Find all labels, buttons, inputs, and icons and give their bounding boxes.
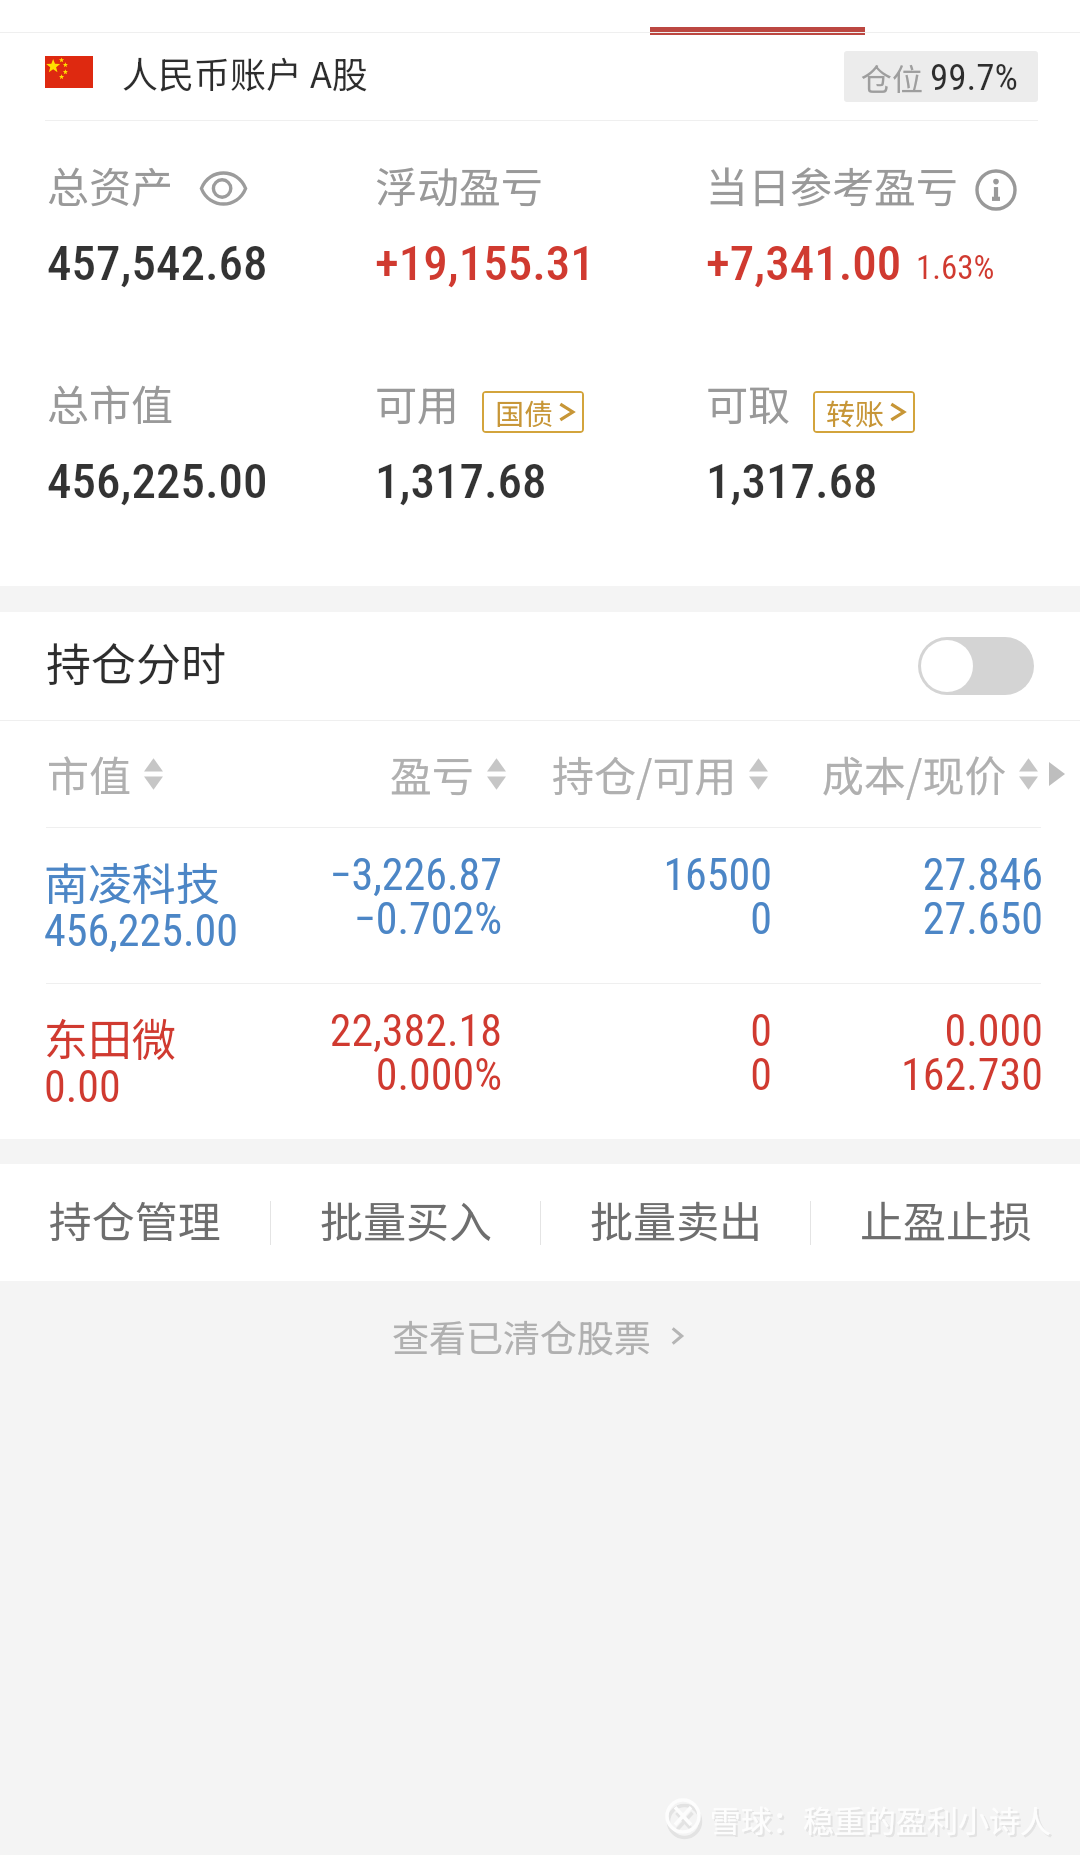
staticText: 1.63% (916, 248, 995, 287)
button[interactable]: 南凌科技 (0, 827, 1080, 983)
button[interactable]: 转账 (813, 391, 915, 433)
button[interactable]: 仓位 (844, 51, 1038, 102)
button[interactable]: 持仓管理 (0, 1164, 270, 1281)
staticText: 0 (520, 893, 772, 945)
staticText: 27.846 (790, 849, 1043, 901)
staticText: 人民币账户 A股 (122, 46, 368, 98)
button[interactable]: 查看已清仓股票 (0, 1273, 1080, 1398)
staticText: 0.000 (790, 1005, 1043, 1057)
staticText: 批量买入 (320, 1188, 492, 1250)
staticText: 可用 (375, 372, 460, 433)
button[interactable]: 持仓/可用 (552, 743, 768, 804)
button[interactable]: 止盈止损 (811, 1164, 1080, 1281)
button[interactable]: 批量买入 (271, 1164, 540, 1281)
staticText: 持仓/可用 (552, 743, 737, 804)
staticText: 27.650 (790, 893, 1043, 945)
staticText: 0.00 (44, 1061, 121, 1113)
button[interactable]: Toggle intraday chart (918, 637, 1034, 695)
staticText: 456,225.00 (44, 905, 239, 957)
staticText: 16500 (520, 849, 772, 901)
button[interactable]: 持仓分时 (0, 607, 1080, 715)
staticText: 1,317.68 (706, 453, 878, 510)
staticText: 22,382.18 (230, 1005, 502, 1057)
staticText: 457,542.68 (47, 235, 268, 292)
staticText: 1,317.68 (375, 453, 547, 510)
button[interactable]: 东田微 (0, 983, 1080, 1139)
button[interactable]: 国债 (482, 391, 584, 433)
staticText: 盈亏 (390, 743, 475, 804)
staticText: 162.730 (790, 1049, 1043, 1101)
staticText: 总资产 (47, 154, 174, 215)
staticText: 南凌科技 (44, 849, 220, 913)
staticText: +19,155.31 (375, 235, 595, 292)
button[interactable]: 市值 (47, 743, 163, 804)
staticText: 成本/现价 (822, 743, 1007, 804)
staticText: 0 (520, 1049, 772, 1101)
staticText: +7,341.00 (706, 235, 902, 292)
staticText: 仓位 (861, 55, 923, 100)
staticText: 国债 (495, 391, 554, 433)
button[interactable]: 盈亏 (390, 743, 506, 804)
button[interactable]: 人民币账户 A股 (0, 28, 1080, 115)
staticText: 止盈止损 (860, 1188, 1032, 1250)
button[interactable]: Toggle balance visibility (200, 170, 247, 207)
staticText: 可取 (706, 372, 791, 433)
button[interactable]: 成本/现价 (822, 743, 1038, 804)
staticText: −0.702% (230, 893, 502, 945)
staticText: 查看已清仓股票 (392, 1309, 651, 1363)
staticText: −3,226.87 (230, 849, 502, 901)
staticText: 浮动盈亏 (375, 154, 544, 215)
staticText: 456,225.00 (47, 453, 268, 510)
staticText: 东田微 (44, 1005, 176, 1069)
staticText: 批量卖出 (590, 1188, 762, 1250)
staticText: 99.7% (930, 56, 1018, 99)
staticText: 雪球：稳重的盈利小诗人 (712, 1799, 1053, 1844)
staticText: 转账 (826, 391, 885, 433)
button[interactable]: 批量卖出 (541, 1164, 810, 1281)
staticText: 持仓管理 (49, 1188, 221, 1250)
staticText: 0.000% (230, 1049, 502, 1101)
staticText: 持仓分时 (46, 629, 227, 694)
staticText: 总市值 (47, 372, 174, 433)
staticText: 0 (520, 1005, 772, 1057)
button[interactable]: Info (975, 169, 1017, 211)
staticText: 市值 (47, 743, 132, 804)
staticText: 雪球：稳重的盈利小诗人 (710, 1797, 1051, 1842)
staticText: 当日参考盈亏 (706, 154, 959, 215)
